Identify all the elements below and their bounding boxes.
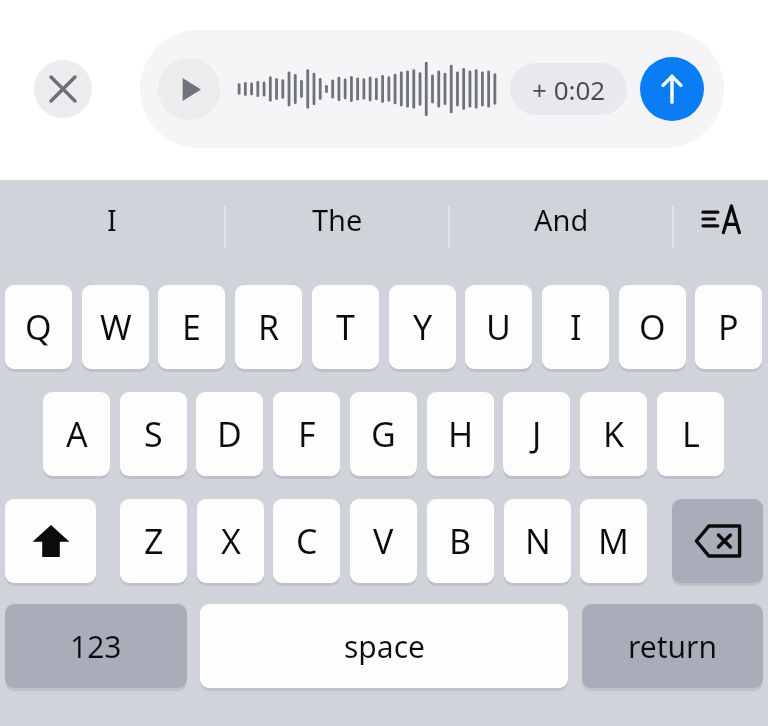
button[interactable]: Backspace [672, 499, 763, 583]
staticText: C [296, 518, 318, 564]
button[interactable]: Text formatting [674, 188, 768, 250]
button[interactable]: X [197, 499, 264, 583]
button[interactable]: H [427, 392, 494, 476]
button[interactable]: P [695, 285, 762, 369]
button[interactable]: Y [389, 285, 456, 369]
staticText: J [532, 411, 542, 457]
staticText: G [371, 411, 396, 457]
staticText: + 0:02 [532, 72, 606, 107]
button[interactable]: Send [640, 57, 704, 121]
button[interactable]: O [619, 285, 686, 369]
button[interactable]: + 0:02 [510, 63, 627, 115]
staticText: V [373, 518, 394, 564]
staticText: return [628, 626, 718, 667]
button[interactable]: R [235, 285, 302, 369]
button[interactable]: Z [120, 499, 187, 583]
staticText: H [448, 411, 474, 457]
staticText: space [344, 626, 425, 667]
staticText: W [100, 304, 132, 350]
staticText: Z [144, 518, 164, 564]
button[interactable]: space [200, 604, 568, 688]
staticText: O [639, 304, 666, 350]
staticText: K [603, 411, 625, 457]
button[interactable]: Cancel recording [34, 60, 92, 118]
staticText: L [682, 411, 700, 457]
button[interactable]: U [465, 285, 532, 369]
button[interactable]: And [450, 188, 672, 250]
staticText: B [449, 518, 472, 564]
button[interactable]: W [82, 285, 149, 369]
button[interactable]: I [0, 188, 224, 250]
button[interactable]: V [350, 499, 417, 583]
staticText: I [570, 304, 582, 350]
button[interactable]: J [503, 392, 570, 476]
button[interactable]: 123 [5, 604, 187, 688]
staticText: I [107, 200, 117, 239]
button[interactable]: B [427, 499, 494, 583]
staticText: 123 [70, 626, 122, 667]
button[interactable]: S [120, 392, 187, 476]
button[interactable]: Play [158, 58, 220, 120]
button[interactable]: D [196, 392, 263, 476]
button[interactable]: E [158, 285, 225, 369]
button[interactable]: L [657, 392, 724, 476]
button[interactable]: Q [5, 285, 72, 369]
staticText: U [486, 304, 511, 350]
staticText: N [525, 518, 551, 564]
staticText: A [66, 411, 88, 457]
button[interactable]: return [582, 604, 763, 688]
button[interactable]: T [312, 285, 379, 369]
button[interactable]: Shift [5, 499, 96, 583]
staticText: R [258, 304, 280, 350]
button[interactable]: The [226, 188, 448, 250]
staticText: Y [413, 304, 433, 350]
button[interactable]: N [504, 499, 571, 583]
staticText: Q [25, 304, 52, 350]
staticText: And [534, 200, 589, 239]
button[interactable]: A [43, 392, 110, 476]
staticText: The [312, 200, 363, 239]
staticText: E [182, 304, 201, 350]
button[interactable]: M [580, 499, 647, 583]
button[interactable]: K [580, 392, 647, 476]
staticText: F [298, 411, 316, 457]
staticText: P [718, 304, 739, 350]
staticText: M [598, 518, 629, 564]
button[interactable]: I [542, 285, 609, 369]
button[interactable]: F [273, 392, 340, 476]
staticText: X [221, 518, 241, 564]
button[interactable]: G [350, 392, 417, 476]
staticText: D [217, 411, 242, 457]
staticText: T [336, 304, 355, 350]
button[interactable]: C [273, 499, 340, 583]
staticText: S [144, 411, 163, 457]
